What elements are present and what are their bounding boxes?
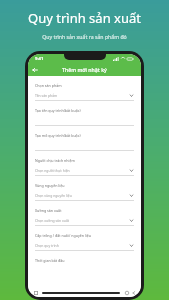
- button[interactable]: [35, 140, 134, 151]
- button[interactable]: Menu: [33, 290, 38, 295]
- staticText: Tạo tên quy trình(bắt buộc): [35, 108, 81, 113]
- other: Expand: [129, 218, 134, 223]
- button[interactable]: Back navigation: [131, 290, 136, 295]
- button[interactable]: [35, 115, 134, 126]
- staticText: Quy trình sản xuất ra sản phẩm đó: [42, 33, 127, 40]
- staticText: Tên sản phẩm: [35, 93, 129, 98]
- staticText: Chọn vùng nguyên liệu: [35, 193, 129, 198]
- other: Expand: [129, 93, 134, 98]
- button[interactable]: Home: [124, 290, 129, 295]
- other: Expand: [129, 168, 134, 173]
- staticText: 9:41: [35, 56, 44, 62]
- button[interactable]: Tên sản phẩm: [35, 90, 134, 101]
- other: Expand: [129, 243, 134, 248]
- staticText: Chọn xưởng sản xuất: [35, 218, 129, 223]
- staticText: Người chịu trách nhiệm: [35, 158, 75, 163]
- staticText: Vùng nguyên liệu: [35, 183, 65, 188]
- staticText: Quy trình sản xuất: [28, 9, 141, 27]
- staticText: Chọn người thực hiện: [35, 168, 129, 173]
- staticText: Cấp trồng / đất nuôi/ nguyên liệu: [35, 233, 92, 238]
- staticText: Xưởng sản xuất: [35, 208, 62, 213]
- staticText: Thêm mới nhật ký: [62, 66, 107, 73]
- button[interactable]: Back: [28, 63, 41, 76]
- staticText: Chọn quy trình: [35, 243, 129, 248]
- staticText: Tạo mô quy trình(bắt buộc): [35, 133, 81, 138]
- button[interactable]: Chọn quy trình: [35, 240, 134, 251]
- button[interactable]: Chọn người thực hiện: [35, 165, 134, 176]
- button[interactable]: Chọn vùng nguyên liệu: [35, 190, 134, 201]
- staticText: Chọn sản phẩm: [35, 83, 62, 88]
- other: Expand: [129, 193, 134, 198]
- button[interactable]: Chọn xưởng sản xuất: [35, 215, 134, 226]
- staticText: Thời gian bắt đầu: [35, 258, 65, 263]
